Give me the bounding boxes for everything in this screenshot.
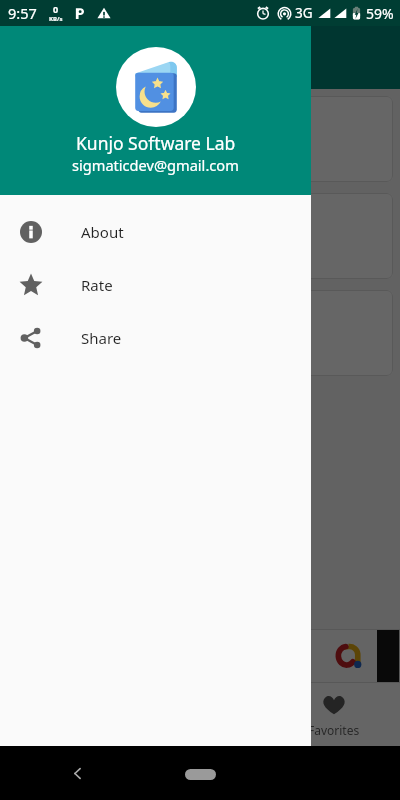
- staticText: About: [81, 222, 124, 242]
- button[interactable]: Back: [64, 760, 90, 786]
- staticText: Favorites: [308, 722, 360, 738]
- staticText: KB/s: [49, 15, 63, 23]
- staticText: 0: [53, 3, 59, 15]
- staticText: 59%: [366, 4, 394, 23]
- staticText: Kunjo Software Lab: [76, 131, 236, 155]
- button[interactable]: Favorites: [267, 683, 400, 746]
- staticText: Rate: [81, 275, 113, 295]
- staticText: sigmaticdev@gmail.com: [72, 155, 239, 175]
- button[interactable]: [7, 193, 393, 279]
- button[interactable]: About: [0, 205, 311, 258]
- button[interactable]: [7, 96, 393, 182]
- button[interactable]: [0, 629, 400, 683]
- button[interactable]: Share: [0, 311, 311, 364]
- staticText: 3G: [295, 4, 313, 22]
- button[interactable]: Home: [185, 769, 216, 780]
- button[interactable]: Rate: [0, 258, 311, 311]
- staticText: 9:57: [8, 3, 37, 23]
- staticText: Share: [81, 328, 122, 348]
- button[interactable]: [7, 290, 393, 376]
